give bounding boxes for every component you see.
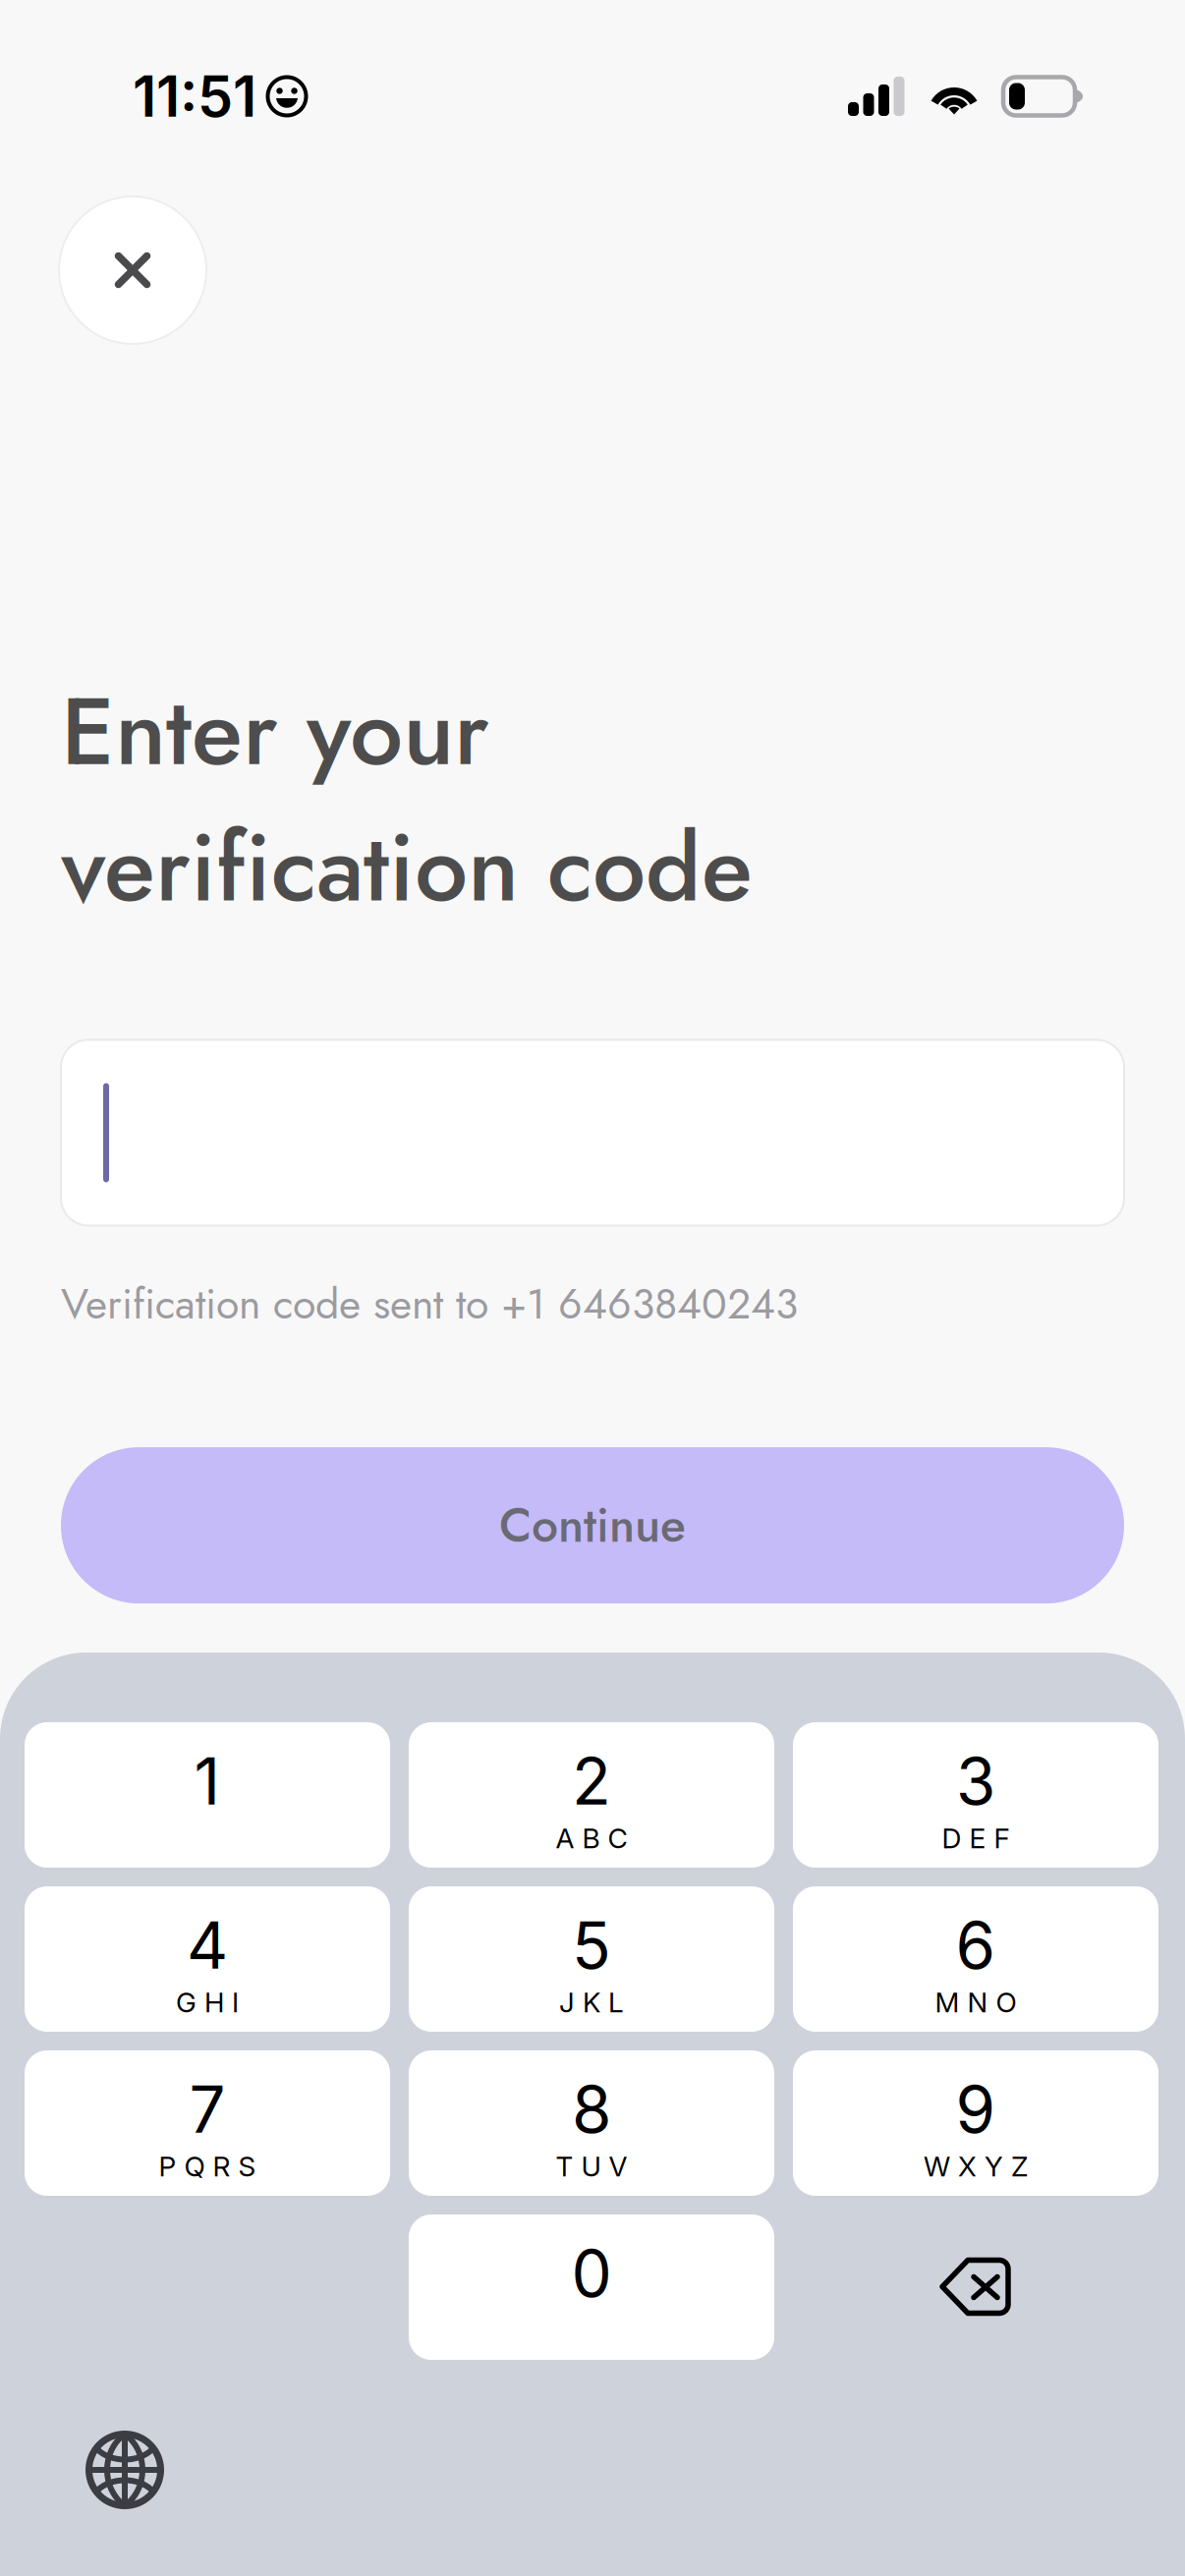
staticText: A B C [556, 1822, 627, 1855]
button[interactable]: 6 [793, 1886, 1158, 2032]
button[interactable]: 1 [25, 1722, 390, 1868]
staticText: Continue [499, 1491, 686, 1559]
button[interactable]: 9 [793, 2050, 1158, 2196]
staticText: 8 [572, 2071, 611, 2148]
staticText: 6 [956, 1906, 996, 1984]
button[interactable]: 7 [25, 2050, 390, 2196]
staticText: T U V [556, 2150, 627, 2183]
staticText: 9 [956, 2071, 996, 2148]
staticText: 2 [572, 1742, 611, 1820]
button[interactable]: Close [59, 196, 206, 344]
button[interactable]: 4 [25, 1886, 390, 2032]
staticText: D E F [942, 1822, 1010, 1855]
button[interactable]: 8 [409, 2050, 774, 2196]
staticText: J K L [559, 1986, 624, 2019]
staticText: 11:51 [133, 62, 256, 130]
staticText: G H I [176, 1986, 239, 2019]
staticText: 1 [194, 1742, 221, 1820]
button[interactable]: Delete [793, 2214, 1158, 2360]
button[interactable]: Next keyboard [85, 2431, 164, 2509]
button[interactable]: 3 [793, 1722, 1158, 1868]
staticText: 0 [571, 2235, 612, 2312]
staticText: 3 [956, 1742, 995, 1820]
button[interactable]: 2 [409, 1722, 774, 1868]
button[interactable]: 5 [409, 1886, 774, 2032]
staticText: 4 [187, 1906, 228, 1984]
staticText: P Q R S [159, 2150, 256, 2183]
staticText: W X Y Z [924, 2150, 1028, 2183]
staticText: 7 [189, 2071, 226, 2148]
staticText: 5 [572, 1906, 611, 1984]
button[interactable]: 0 [409, 2214, 774, 2360]
button[interactable]: Continue [61, 1447, 1124, 1603]
staticText: Verification code sent to +1 6463840243 [61, 1274, 798, 1334]
staticText: Enter your verification code [61, 663, 753, 936]
staticText: M N O [935, 1986, 1016, 2019]
